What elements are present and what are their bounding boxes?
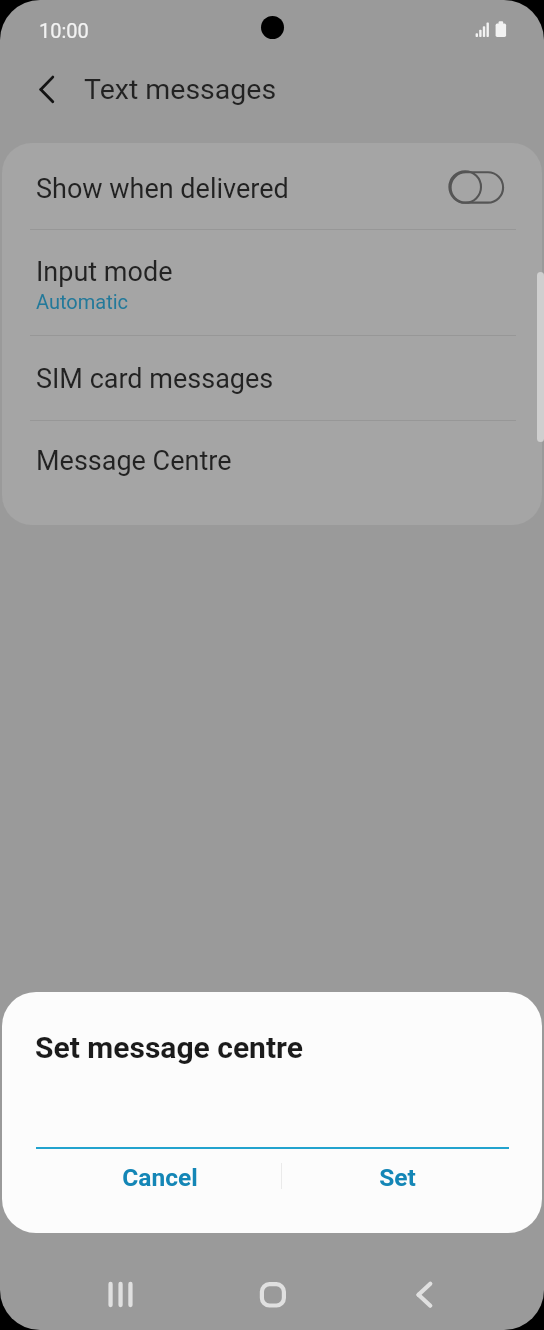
button[interactable]: Navigate up bbox=[20, 67, 68, 115]
staticText: 10:00 bbox=[39, 19, 89, 42]
button[interactable] bbox=[2, 229, 542, 335]
staticText: Set message centre bbox=[35, 1030, 303, 1065]
staticText: Message Centre bbox=[36, 445, 232, 477]
button[interactable] bbox=[2, 335, 542, 419]
staticText: Set bbox=[379, 1163, 416, 1192]
staticText: Input mode bbox=[36, 256, 173, 288]
staticText: Automatic bbox=[36, 290, 129, 313]
button[interactable]: Set bbox=[285, 1149, 510, 1205]
button[interactable]: Show when delivered toggle bbox=[442, 163, 512, 211]
button[interactable] bbox=[2, 419, 542, 525]
staticText: SIM card messages bbox=[36, 363, 274, 395]
staticText: Cancel bbox=[122, 1163, 198, 1192]
staticText: Text messages bbox=[84, 73, 277, 106]
staticText: Show when delivered bbox=[36, 173, 289, 205]
button[interactable]: Recent apps bbox=[90, 1262, 150, 1322]
button[interactable] bbox=[2, 143, 542, 228]
button[interactable]: Cancel bbox=[39, 1149, 281, 1205]
button[interactable]: Back bbox=[398, 1262, 458, 1322]
button[interactable]: Home bbox=[240, 1262, 300, 1322]
